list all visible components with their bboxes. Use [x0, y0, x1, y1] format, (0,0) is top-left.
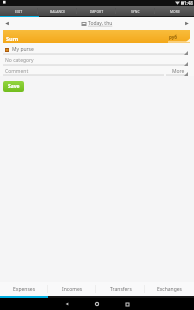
staticText: Save [8, 83, 20, 90]
button[interactable]: Exchanges [145, 282, 194, 296]
staticText: Transfers [110, 286, 132, 293]
staticText: Today, thu [88, 20, 113, 27]
button[interactable]: SYNC [116, 6, 155, 16]
button[interactable]: IMPORT [77, 6, 116, 16]
button[interactable]: MORE [155, 6, 194, 16]
staticText: My purse [12, 46, 34, 53]
staticText: BALANCE [50, 9, 66, 14]
button[interactable]: Today, thu [82, 20, 113, 27]
button[interactable]: Transfers [96, 282, 145, 296]
staticText: EXIT [15, 9, 23, 14]
staticText: Exchanges [157, 286, 183, 293]
button[interactable]: Back [52, 298, 82, 310]
staticText: SYNC [131, 9, 140, 14]
staticText: No category [5, 57, 34, 64]
staticText: Comment [5, 68, 29, 75]
button[interactable]: More [166, 66, 194, 76]
button[interactable]: EXIT [0, 6, 38, 16]
button[interactable]: BALANCE [38, 6, 77, 16]
staticText: Expenses [13, 286, 36, 293]
staticText: More [172, 68, 185, 75]
button[interactable]: Comment [0, 66, 164, 76]
staticText: руб [169, 34, 178, 40]
staticText: Sum [6, 35, 19, 43]
button[interactable]: No category [0, 55, 194, 66]
button[interactable]: Previous day [4, 20, 11, 27]
button[interactable]: Home [82, 298, 112, 310]
button[interactable]: Sum [3, 30, 190, 43]
button[interactable]: Incomes [48, 282, 96, 296]
staticText: MORE [170, 9, 180, 14]
button[interactable]: Expenses [0, 282, 48, 296]
staticText: Incomes [62, 286, 83, 293]
staticText: 1:48 [184, 0, 193, 6]
staticText: IMPORT [90, 9, 104, 14]
button[interactable]: My purse [0, 43, 194, 55]
button[interactable]: Save [3, 81, 24, 92]
button[interactable]: Next day [183, 20, 190, 27]
button[interactable]: Recents [112, 298, 142, 310]
